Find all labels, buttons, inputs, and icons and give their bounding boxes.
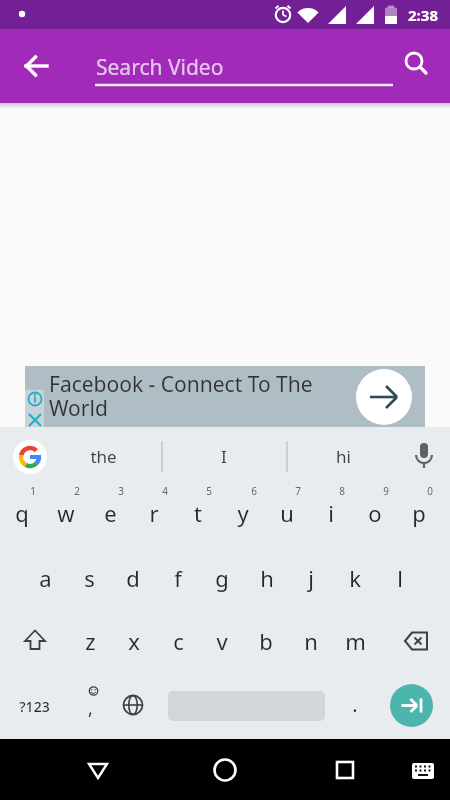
button[interactable]: s bbox=[67, 556, 111, 600]
button[interactable]: h bbox=[245, 556, 289, 600]
button[interactable]: v bbox=[200, 619, 244, 663]
button[interactable]: i bbox=[309, 491, 353, 535]
button[interactable] bbox=[201, 746, 249, 794]
staticText: b bbox=[259, 626, 273, 656]
staticText: c bbox=[173, 626, 184, 656]
button[interactable]: hi bbox=[293, 436, 393, 476]
button[interactable]: Search Video bbox=[90, 45, 395, 88]
button[interactable]: p bbox=[397, 491, 441, 535]
staticText: 1 bbox=[30, 484, 36, 498]
staticText: a bbox=[39, 563, 52, 593]
staticText: 5 bbox=[206, 484, 212, 498]
button[interactable]: the bbox=[53, 436, 153, 476]
button[interactable]: o bbox=[353, 491, 397, 535]
button[interactable]: g bbox=[200, 556, 244, 600]
button[interactable] bbox=[74, 746, 122, 794]
staticText: x bbox=[128, 626, 140, 656]
staticText: Facebook - Connect To The bbox=[49, 370, 313, 399]
button[interactable]: a bbox=[23, 556, 67, 600]
button[interactable] bbox=[396, 42, 442, 88]
staticText: hi bbox=[336, 445, 351, 468]
staticText: k bbox=[349, 563, 361, 593]
staticText: g bbox=[215, 563, 229, 593]
staticText: l bbox=[397, 563, 403, 593]
staticText: ?123 bbox=[19, 697, 50, 716]
staticText: p bbox=[412, 498, 426, 528]
button[interactable]: ?123 bbox=[6, 684, 62, 728]
button[interactable]: k bbox=[333, 556, 377, 600]
staticText: e bbox=[104, 498, 117, 528]
staticText: u bbox=[280, 498, 294, 528]
button[interactable] bbox=[13, 440, 47, 474]
staticText: World bbox=[49, 394, 108, 423]
staticText: w bbox=[57, 498, 75, 528]
button[interactable] bbox=[392, 619, 438, 663]
button[interactable]: c bbox=[156, 619, 200, 663]
staticText: 3 bbox=[118, 484, 124, 498]
staticText: Search Video bbox=[96, 53, 224, 82]
staticText: t bbox=[194, 498, 202, 528]
button[interactable]: r bbox=[132, 491, 176, 535]
staticText: j bbox=[308, 563, 314, 593]
button[interactable]: j bbox=[289, 556, 333, 600]
button[interactable] bbox=[110, 684, 156, 728]
staticText: 0 bbox=[427, 484, 433, 498]
staticText: the bbox=[90, 445, 117, 468]
button[interactable]: . bbox=[337, 682, 373, 726]
staticText: q bbox=[15, 498, 29, 528]
staticText: . bbox=[352, 691, 358, 718]
button[interactable]: y bbox=[221, 491, 265, 535]
staticText: 6 bbox=[251, 484, 257, 498]
button[interactable]: b bbox=[244, 619, 288, 663]
button[interactable]: w bbox=[44, 491, 88, 535]
button[interactable] bbox=[402, 748, 444, 792]
staticText: z bbox=[85, 626, 96, 656]
button[interactable] bbox=[356, 369, 412, 425]
button[interactable] bbox=[12, 619, 58, 663]
staticText: 7 bbox=[295, 484, 301, 498]
staticText: 9 bbox=[383, 484, 389, 498]
staticText: 8 bbox=[339, 484, 345, 498]
button[interactable]: t bbox=[176, 491, 220, 535]
button[interactable]: m bbox=[333, 619, 377, 663]
button[interactable]: z bbox=[68, 619, 112, 663]
button[interactable]: n bbox=[289, 619, 333, 663]
button[interactable] bbox=[321, 746, 369, 794]
button[interactable]: q bbox=[0, 491, 44, 535]
button[interactable]: I bbox=[174, 436, 274, 476]
staticText: i bbox=[328, 498, 334, 528]
button[interactable]: x bbox=[112, 619, 156, 663]
button[interactable] bbox=[12, 42, 60, 90]
staticText: m bbox=[345, 626, 366, 656]
button[interactable] bbox=[390, 684, 433, 727]
staticText: f bbox=[174, 563, 182, 593]
staticText: , bbox=[88, 696, 93, 721]
staticText: 2:38 bbox=[408, 5, 438, 25]
staticText: n bbox=[304, 626, 318, 656]
staticText: s bbox=[84, 563, 95, 593]
staticText: r bbox=[149, 498, 159, 528]
staticText: h bbox=[260, 563, 274, 593]
button[interactable]: d bbox=[111, 556, 155, 600]
button[interactable]: l bbox=[378, 556, 422, 600]
staticText: o bbox=[368, 498, 382, 528]
button[interactable]: f bbox=[156, 556, 200, 600]
staticText: 2 bbox=[74, 484, 80, 498]
button[interactable]: u bbox=[265, 491, 309, 535]
staticText: I bbox=[221, 445, 227, 468]
staticText: y bbox=[237, 498, 249, 528]
staticText: 4 bbox=[162, 484, 168, 498]
button[interactable]: e bbox=[88, 491, 132, 535]
button[interactable]: , bbox=[72, 686, 108, 730]
staticText: v bbox=[216, 626, 228, 656]
button[interactable]: Facebook - Connect To The bbox=[25, 366, 425, 427]
staticText: d bbox=[126, 563, 140, 593]
